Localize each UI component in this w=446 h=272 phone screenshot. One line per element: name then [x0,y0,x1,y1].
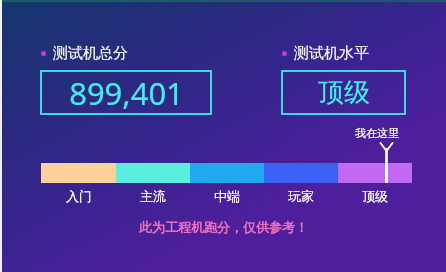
button[interactable]: 玩家 [264,188,338,204]
button[interactable]: 中端 [190,188,264,204]
staticText: 顶级 [362,188,388,204]
staticText: 测试机水平 [294,44,369,63]
staticText: 我在这里 [355,126,399,140]
button[interactable]: 899,401 [41,71,211,114]
staticText: 中端 [214,188,240,204]
staticText: 顶级 [318,76,370,109]
staticText: 入门 [66,188,92,204]
button[interactable]: 顶级 [338,188,412,204]
button[interactable] [338,163,412,183]
other: 我在这里指示器 [378,142,395,163]
button[interactable]: 我在这里 [355,126,399,140]
staticText: 899,401 [69,72,184,114]
staticText: 此为工程机跑分，仅供参考！ [139,219,308,235]
staticText: 主流 [140,188,166,204]
staticText: 玩家 [288,188,314,204]
staticText: 测试机总分 [53,44,128,63]
button[interactable]: 顶级 [282,71,405,114]
button[interactable]: 测试机水平 [282,44,369,63]
button[interactable]: 入门 [41,188,116,204]
button[interactable]: 主流 [116,188,190,204]
button[interactable]: 测试机总分 [41,44,128,63]
